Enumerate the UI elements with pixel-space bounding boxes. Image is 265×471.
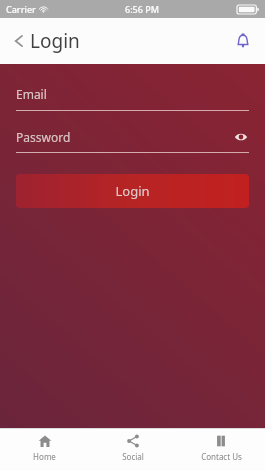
button[interactable]: Show password [233, 129, 249, 145]
button[interactable]: Back [0, 26, 30, 56]
button[interactable]: Email [16, 86, 249, 111]
staticText: Login [115, 182, 150, 200]
staticText: Home [33, 451, 56, 462]
staticText: Email [16, 86, 47, 102]
button[interactable]: Home [0, 429, 89, 471]
button[interactable]: Notifications [221, 23, 265, 59]
staticText: Carrier [6, 3, 36, 15]
button[interactable]: Password [16, 129, 249, 153]
button[interactable]: Social [89, 429, 177, 471]
button[interactable]: Login [16, 174, 249, 208]
staticText: Contact Us [201, 451, 242, 462]
staticText: Social [122, 451, 144, 462]
button[interactable]: Contact Us [177, 429, 265, 471]
staticText: Login [30, 28, 80, 54]
staticText: 6:56 PM [125, 3, 159, 15]
staticText: Password [16, 129, 71, 145]
